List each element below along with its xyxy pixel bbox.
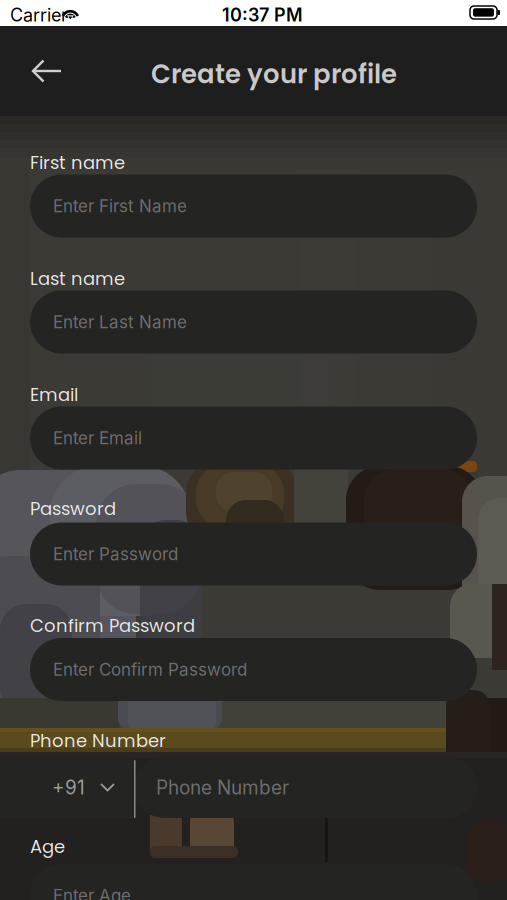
staticText: +91	[52, 776, 85, 799]
button[interactable]: Phone Number	[134, 757, 477, 818]
button[interactable]: Country code +91	[0, 757, 134, 818]
button[interactable]: Back	[25, 49, 69, 93]
staticText: Last name	[30, 266, 125, 291]
staticText: Phone Number	[30, 728, 166, 753]
staticText: Phone Number	[156, 776, 289, 799]
staticText: Email	[30, 382, 78, 407]
staticText: Carrier	[10, 4, 68, 26]
staticText: Create your profile	[151, 56, 397, 92]
staticText: Enter Age	[53, 885, 131, 900]
button[interactable]: Enter Password	[30, 522, 477, 585]
button[interactable]: Enter First Name	[30, 174, 477, 237]
staticText: Enter First Name	[53, 196, 187, 216]
button[interactable]: Enter Age	[30, 864, 477, 900]
button[interactable]: Enter Confirm Password	[30, 638, 477, 701]
staticText: Age	[30, 834, 65, 859]
staticText: First name	[30, 150, 125, 175]
staticText: Enter Confirm Password	[53, 659, 247, 680]
staticText: 10:37 PM	[222, 4, 303, 26]
button[interactable]: Enter Email	[30, 406, 477, 469]
staticText: Enter Password	[53, 544, 178, 564]
button[interactable]: Enter Last Name	[30, 290, 477, 353]
staticText: Enter Email	[53, 428, 142, 448]
staticText: Password	[30, 496, 116, 521]
staticText: Enter Last Name	[53, 312, 187, 332]
staticText: Confirm Password	[30, 613, 195, 638]
